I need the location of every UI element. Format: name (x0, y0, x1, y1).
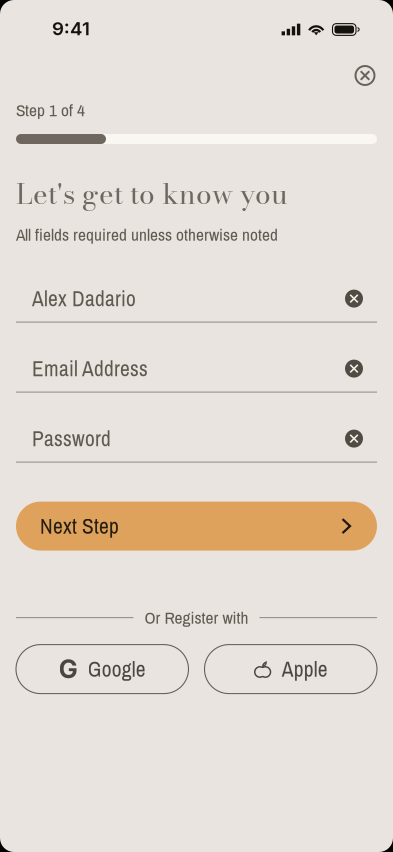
button[interactable]: Apple (204, 645, 377, 694)
staticText: Let's get to know you (16, 173, 288, 215)
button[interactable]: Clear text (337, 352, 371, 386)
staticText: Email Address (32, 354, 148, 383)
staticText: Or Register with (144, 606, 248, 629)
staticText: Step 1 of 4 (16, 98, 85, 122)
button[interactable]: Email Address (0, 346, 393, 393)
staticText: Alex Dadario (32, 284, 136, 313)
button[interactable]: Next Step (16, 502, 377, 551)
button[interactable]: Alex Dadario (0, 276, 393, 323)
staticText: G (59, 654, 78, 684)
staticText: Next Step (40, 512, 119, 540)
button[interactable]: Close (345, 55, 385, 95)
staticText: Password (32, 424, 111, 453)
button[interactable]: Clear text (337, 422, 371, 456)
staticText: All fields required unless otherwise not… (16, 223, 278, 246)
button[interactable]: G (16, 645, 188, 694)
staticText: Apple (282, 655, 328, 683)
button[interactable]: Clear text (337, 282, 371, 316)
staticText: Google (88, 655, 146, 683)
staticText: 9:41 (52, 17, 90, 40)
button[interactable]: Password (0, 416, 393, 463)
